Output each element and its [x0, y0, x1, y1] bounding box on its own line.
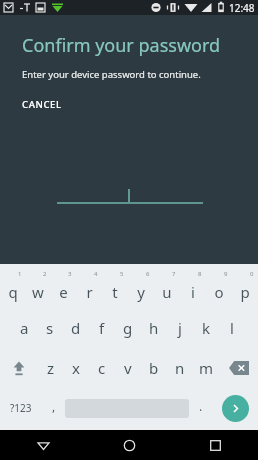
button[interactable]: f — [89, 308, 115, 348]
staticText: Enter your device password to continue. — [22, 68, 201, 81]
staticText: l — [230, 318, 234, 338]
staticText: Confirm your password — [22, 33, 221, 58]
staticText: r — [86, 282, 93, 302]
staticText: q — [8, 282, 18, 302]
button[interactable]: Backspace — [219, 348, 258, 388]
button[interactable]: CANCEL — [16, 94, 68, 115]
staticText: k — [202, 318, 211, 338]
button[interactable]: Enter — [222, 395, 249, 422]
staticText: x — [72, 358, 80, 378]
staticText: b — [149, 358, 159, 378]
button[interactable]: Home — [86, 430, 172, 460]
staticText: g — [123, 318, 133, 338]
button[interactable]: m — [193, 348, 219, 388]
staticText: p — [240, 282, 250, 302]
staticText: j — [178, 318, 182, 338]
staticText: 2 — [43, 270, 47, 278]
staticText: u — [162, 282, 172, 302]
staticText: w — [32, 282, 44, 302]
button[interactable]: Back — [0, 430, 86, 460]
button[interactable]: x — [63, 348, 89, 388]
staticText: . — [199, 398, 203, 414]
button[interactable]: d — [63, 308, 89, 348]
button[interactable]: l — [219, 308, 245, 348]
button[interactable]: 3 — [50, 268, 76, 308]
staticText: 4 — [94, 270, 98, 278]
button[interactable]: 8 — [180, 268, 206, 308]
button[interactable]: b — [141, 348, 167, 388]
staticText: v — [124, 358, 132, 378]
staticText: e — [59, 282, 68, 302]
staticText: z — [47, 358, 55, 378]
staticText: 8 — [198, 270, 202, 278]
button[interactable]: k — [193, 308, 219, 348]
staticText: 12:48 — [229, 1, 255, 15]
staticText: m — [199, 358, 214, 378]
button[interactable]: 1 — [0, 268, 25, 308]
button[interactable]: 9 — [206, 268, 232, 308]
staticText: o — [214, 282, 224, 302]
button[interactable]: . — [189, 388, 212, 428]
button[interactable]: 6 — [128, 268, 154, 308]
staticText: n — [175, 358, 185, 378]
staticText: i — [191, 282, 195, 302]
button[interactable]: 0 — [232, 268, 258, 308]
staticText: f — [99, 318, 105, 338]
button[interactable]: z — [38, 348, 63, 388]
button[interactable]: c — [89, 348, 115, 388]
staticText: 1 — [18, 270, 22, 278]
button[interactable]: s — [37, 308, 63, 348]
staticText: , — [52, 398, 56, 414]
staticText: 6 — [146, 270, 150, 278]
staticText: t — [112, 282, 118, 302]
button[interactable]: 7 — [154, 268, 180, 308]
staticText: h — [149, 318, 159, 338]
button[interactable]: Password field — [0, 173, 258, 213]
staticText: 5 — [120, 270, 124, 278]
staticText: 9 — [224, 270, 228, 278]
button[interactable]: ?123 — [0, 388, 42, 428]
staticText: ?123 — [10, 401, 32, 415]
button[interactable]: , — [42, 388, 65, 428]
staticText: CANCEL — [22, 98, 62, 111]
staticText: s — [46, 318, 54, 338]
staticText: 3 — [68, 270, 72, 278]
button[interactable]: g — [115, 308, 141, 348]
button[interactable]: h — [141, 308, 167, 348]
staticText: a — [20, 318, 29, 338]
button[interactable]: 2 — [25, 268, 50, 308]
staticText: 0 — [250, 270, 254, 278]
button[interactable]: a — [12, 308, 37, 348]
staticText: y — [137, 282, 145, 302]
button[interactable]: n — [167, 348, 193, 388]
staticText: 7 — [172, 270, 176, 278]
button[interactable]: 4 — [76, 268, 102, 308]
staticText: d — [71, 318, 81, 338]
staticText: c — [98, 358, 106, 378]
button[interactable]: j — [167, 308, 193, 348]
button[interactable]: Recents — [172, 430, 258, 460]
button[interactable]: Shift — [0, 348, 38, 388]
button[interactable]: v — [115, 348, 141, 388]
button[interactable]: 5 — [102, 268, 128, 308]
